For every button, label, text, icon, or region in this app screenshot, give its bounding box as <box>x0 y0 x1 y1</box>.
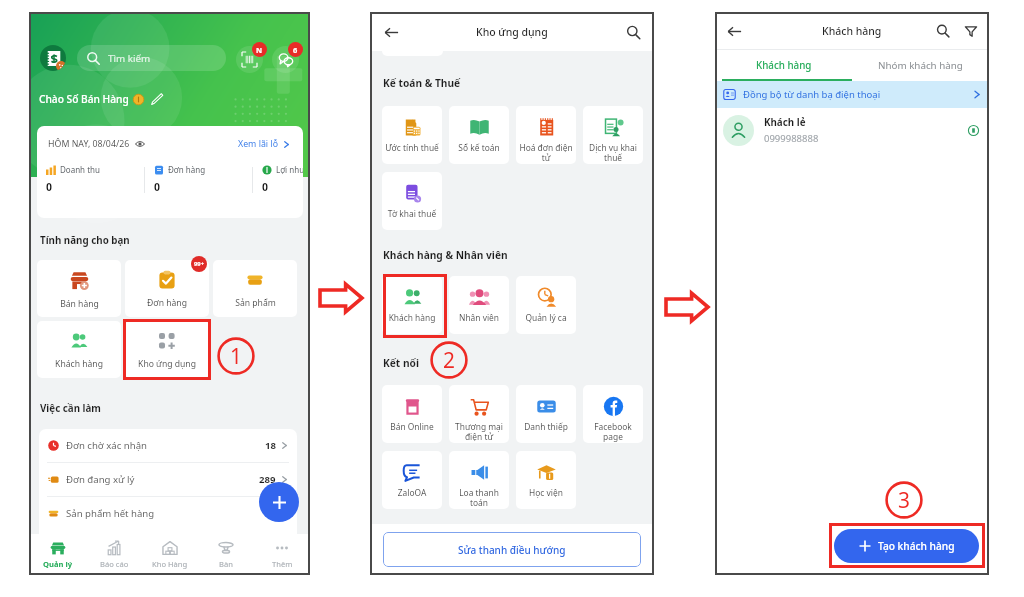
staticText: 1 <box>230 342 242 370</box>
button[interactable]: Sửa thanh điều hướng <box>383 532 641 567</box>
staticText: Quản lý <box>43 559 73 569</box>
staticText: Hoá đơn điện tử <box>517 142 575 163</box>
button[interactable]: Thêm <box>254 534 310 575</box>
staticText: Kế toán & Thuế <box>383 76 461 90</box>
staticText: Kết nối <box>383 356 419 370</box>
button[interactable]: Tờ khai thuế <box>382 172 442 230</box>
staticText: 0999988888 <box>764 132 819 145</box>
staticText: Đồng bộ từ danh bạ điện thoại <box>743 88 881 101</box>
staticText: Sửa thanh điều hướng <box>458 543 566 557</box>
button[interactable]: Danh thiếp <box>516 385 576 443</box>
staticText: Chào Số Bán Hàng <box>39 92 129 106</box>
button[interactable]: Back <box>719 16 749 46</box>
button[interactable]: Báo cáo <box>86 534 142 575</box>
button[interactable]: Nhân viên <box>449 276 509 334</box>
staticText: Khách hàng <box>822 24 882 38</box>
staticText: Lợi nhuận <box>276 164 303 175</box>
staticText: Tờ khai thuế <box>383 208 441 219</box>
staticText: Xem lãi lỗ <box>238 138 278 150</box>
button[interactable]: Nhóm khách hàng <box>852 50 989 81</box>
button[interactable]: Sản phẩm <box>213 260 297 317</box>
button[interactable]: Messages <box>272 46 299 73</box>
button[interactable]: Thương mại điện tử <box>449 385 509 443</box>
button[interactable]: Dịch vụ khai thuế <box>583 106 643 164</box>
button[interactable]: Hoá đơn điện tử <box>516 106 576 164</box>
staticText: Sản phẩm hết hàng <box>66 507 155 520</box>
button[interactable]: Khách lẻ <box>723 108 979 153</box>
staticText: Tạo khách hàng <box>878 539 955 553</box>
button[interactable]: Loa thanh toán <box>449 451 509 509</box>
staticText: 0 <box>154 180 161 194</box>
staticText: Kho ứng dụng <box>476 25 548 39</box>
button[interactable]: Facebook page <box>583 385 643 443</box>
button[interactable]: Sản phẩm hết hàng <box>48 497 288 530</box>
staticText: Bán hàng <box>60 298 99 310</box>
button[interactable]: Đơn hàng <box>125 260 209 317</box>
staticText: Doanh thu <box>60 164 100 175</box>
button[interactable]: Đơn chờ xác nhận <box>48 429 288 462</box>
staticText: Đơn chờ xác nhận <box>66 439 147 452</box>
button[interactable]: Quản lý <box>29 534 86 575</box>
staticText: Thương mại điện tử <box>450 421 508 442</box>
staticText: Nhóm khách hàng <box>878 59 963 72</box>
button[interactable]: Kho ứng dụng <box>125 321 209 378</box>
button[interactable]: Đơn đang xử lý <box>48 463 288 496</box>
button[interactable]: Đồng bộ từ danh bạ điện thoại <box>723 81 981 108</box>
staticText: 0 <box>46 180 53 194</box>
button[interactable]: Học viện <box>516 451 576 509</box>
staticText: N <box>256 45 263 55</box>
staticText: 0 <box>262 180 269 194</box>
button[interactable]: Filter <box>959 19 983 43</box>
staticText: Khách hàng <box>756 59 812 72</box>
staticText: Facebook page <box>584 421 642 442</box>
staticText: Bán Online <box>383 421 441 432</box>
button[interactable]: App logo <box>40 45 66 71</box>
button[interactable]: Khách hàng <box>37 321 121 378</box>
button[interactable]: Ước tính thuế <box>382 106 442 164</box>
button[interactable]: Bàn <box>198 534 254 575</box>
button[interactable]: Quản lý ca <box>516 276 576 334</box>
staticText: Tìm kiếm <box>108 52 151 65</box>
button[interactable]: Bán Online <box>382 385 442 443</box>
button[interactable]: Bán hàng <box>37 260 121 317</box>
button[interactable]: Kho Hàng <box>142 534 198 575</box>
button[interactable]: Khách hàng <box>382 276 442 334</box>
staticText: Sản phẩm <box>235 297 276 309</box>
staticText: 2 <box>443 346 455 374</box>
staticText: Kho Hàng <box>152 559 188 569</box>
button[interactable]: Khách hàng <box>715 50 852 81</box>
staticText: Kho ứng dụng <box>138 358 196 370</box>
button[interactable]: Tìm kiếm <box>77 45 226 71</box>
button[interactable]: Search <box>618 17 648 47</box>
staticText: Đơn đang xử lý <box>66 473 135 486</box>
staticText: Học viện <box>517 487 575 498</box>
staticText: Dịch vụ khai thuế <box>584 142 642 163</box>
staticText: Loa thanh toán <box>450 487 508 508</box>
staticText: 18 <box>265 439 276 452</box>
button[interactable]: Add <box>259 482 299 522</box>
button[interactable]: Back <box>376 17 406 47</box>
button[interactable]: Sổ kế toán <box>449 106 509 164</box>
staticText: Sổ kế toán <box>450 142 508 153</box>
staticText: Khách hàng <box>55 358 103 370</box>
staticText: Tính năng cho bạn <box>40 234 130 247</box>
button[interactable]: ZaloOA <box>382 451 442 509</box>
staticText: Đơn hàng <box>168 164 206 175</box>
staticText: Nhân viên <box>450 312 508 323</box>
staticText: Khách lẻ <box>764 116 806 129</box>
button[interactable]: Tạo khách hàng <box>834 529 979 563</box>
staticText: ZaloOA <box>383 487 441 498</box>
staticText: Thêm <box>272 559 293 569</box>
staticText: Bàn <box>219 559 233 569</box>
staticText: Báo cáo <box>100 559 129 569</box>
staticText: Khách hàng & Nhân viên <box>383 248 508 262</box>
staticText: HÔM NAY, 08/04/26 <box>48 138 130 150</box>
button[interactable]: HÔM NAY, 08/04/26 <box>37 126 303 218</box>
staticText: 99+ <box>194 260 204 268</box>
staticText: Quản lý ca <box>517 312 575 323</box>
staticText: 3 <box>898 486 910 514</box>
button[interactable]: Scan <box>236 46 263 73</box>
staticText: Ước tính thuế <box>383 142 441 153</box>
button[interactable]: Search <box>931 19 955 43</box>
